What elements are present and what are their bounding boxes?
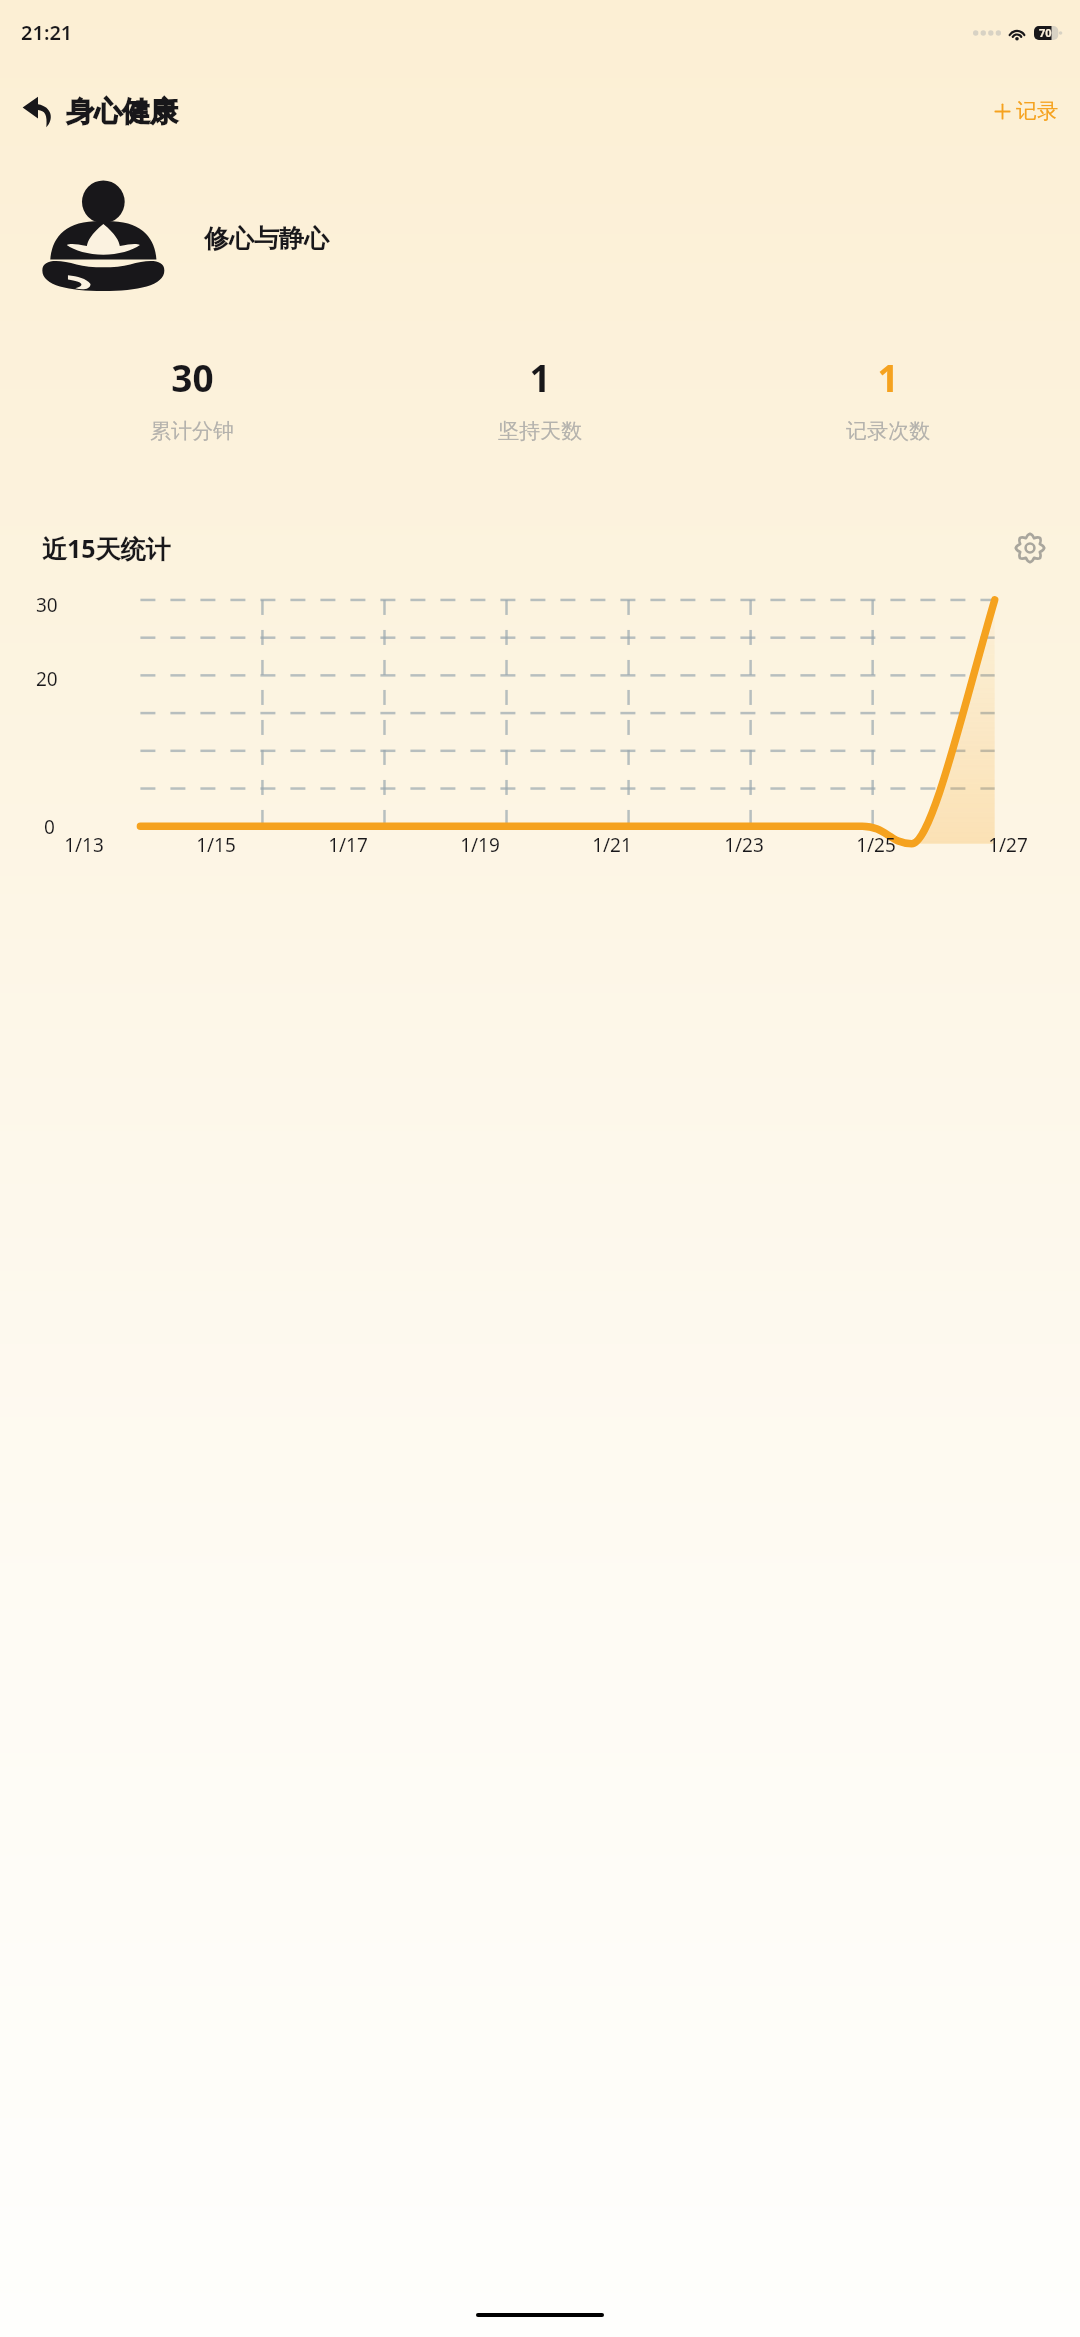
button[interactable]: Back [0,94,186,129]
staticText: 坚持天数 [498,418,582,444]
button[interactable]: 1 [714,352,1062,444]
staticText: 70 [1039,25,1052,40]
other: Back [22,96,54,128]
staticText: 1/17 [282,832,414,858]
staticText: 记录 [1016,98,1058,124]
staticText: 1/23 [678,832,810,858]
staticText: 1 [877,352,899,402]
staticText: 近15天统计 [42,531,171,565]
button[interactable]: 记录 [984,94,1080,128]
staticText: 1/27 [942,832,1074,858]
staticText: 30 [36,592,58,618]
staticText: 1/21 [546,832,678,858]
staticText: 20 [36,666,58,692]
staticText: 1/25 [810,832,942,858]
button[interactable]: 30 [18,352,366,444]
staticText: 1/15 [150,832,282,858]
staticText: 21:21 [21,19,73,46]
staticText: 记录次数 [846,418,930,444]
staticText: 1/19 [414,832,546,858]
staticText: 30 [171,352,214,402]
button[interactable]: 1 [366,352,714,444]
staticText: 1/13 [18,832,150,858]
staticText: 0 [44,814,55,840]
staticText: 身心健康 [66,94,178,129]
staticText: 修心与静心 [204,223,329,254]
staticText: 1 [529,352,551,402]
staticText: 累计分钟 [150,418,234,444]
button[interactable]: Settings [1010,528,1050,568]
